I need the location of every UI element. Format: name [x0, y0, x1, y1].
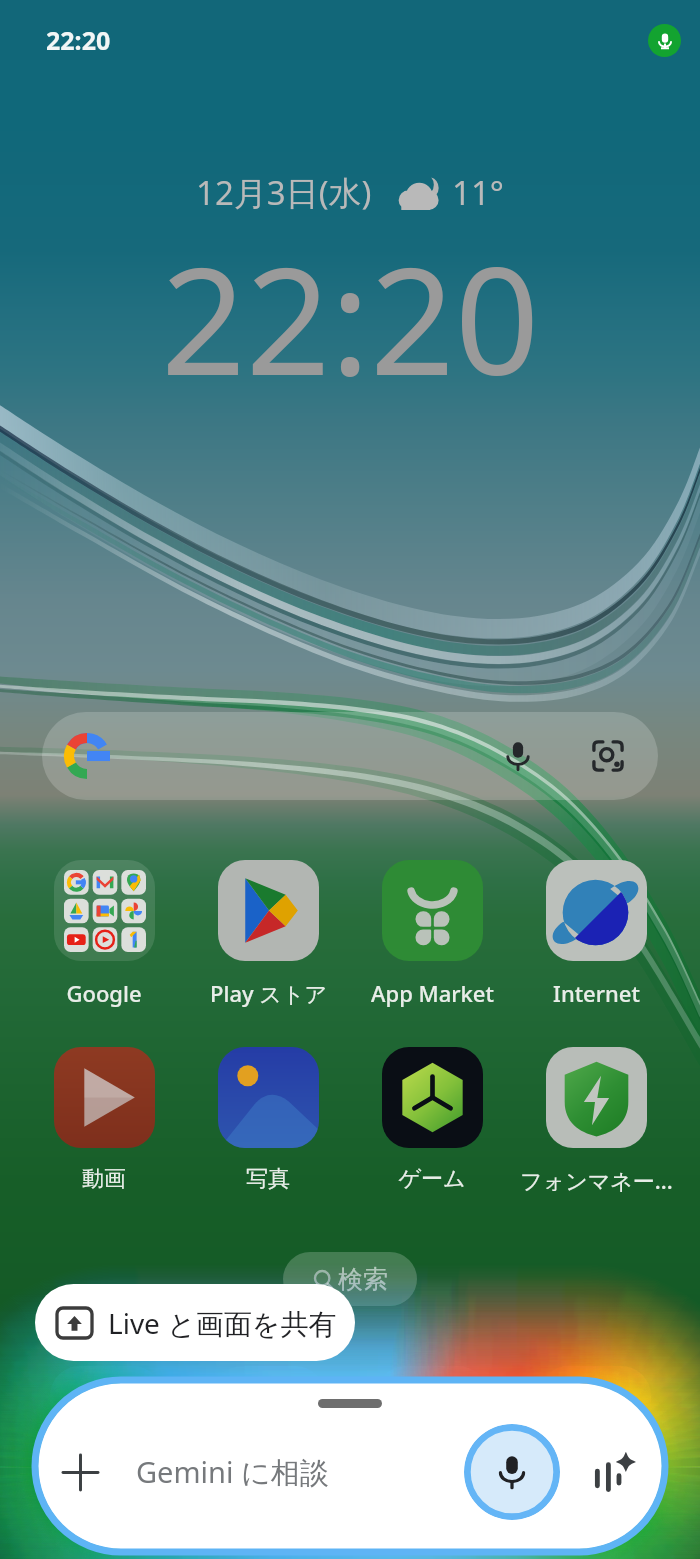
button[interactable]: Add	[49, 1441, 111, 1503]
staticText: Google	[66, 978, 142, 1008]
button[interactable]: Play ストア	[186, 860, 350, 1008]
button[interactable]: App Market	[350, 860, 514, 1008]
staticText: 11°	[452, 170, 504, 215]
button[interactable]: 動画	[22, 1047, 186, 1193]
staticText: Live と画面を共有	[108, 1304, 337, 1342]
button[interactable]: Voice input	[464, 1424, 560, 1520]
button[interactable]: フォンマネー...	[514, 1047, 678, 1195]
button[interactable]: Voice search	[490, 728, 546, 784]
button[interactable]: Gemini Live	[578, 1437, 648, 1507]
staticText: Play ストア	[210, 978, 327, 1008]
staticText: 22:20	[161, 217, 540, 419]
staticText: 12月3日(水)	[196, 170, 372, 215]
other: Microphone in use	[648, 24, 681, 57]
staticText: Gemini に相談	[136, 1452, 329, 1492]
staticText: 22:20	[46, 23, 111, 57]
staticText: 検索	[338, 1264, 388, 1295]
button[interactable]: Internet	[514, 860, 678, 1008]
staticText: App Market	[371, 978, 494, 1008]
staticText: ゲーム	[398, 1165, 466, 1193]
staticText: 写真	[246, 1165, 290, 1193]
staticText: フォンマネー...	[520, 1165, 673, 1195]
staticText: Internet	[553, 978, 640, 1008]
button[interactable]: Google Lens	[580, 728, 636, 784]
button[interactable]: Voice search	[42, 712, 658, 800]
button[interactable]: ゲーム	[350, 1047, 514, 1193]
button[interactable]: Google	[22, 860, 186, 1008]
staticText: 動画	[82, 1165, 126, 1193]
button[interactable]: 12月3日(水)	[0, 170, 700, 419]
button[interactable]: 写真	[186, 1047, 350, 1193]
button[interactable]: Add	[38, 1383, 662, 1549]
button[interactable]: Live と画面を共有	[35, 1284, 355, 1361]
